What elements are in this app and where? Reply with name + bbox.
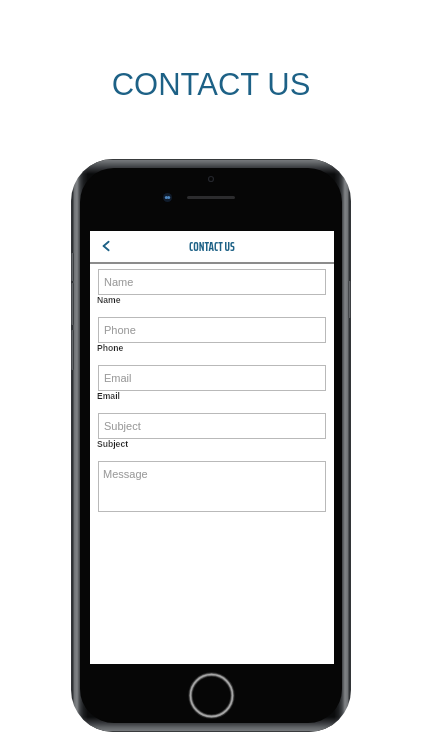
staticText: CONTACT US [0,67,422,102]
button[interactable]: Email [98,365,326,391]
staticText: Name [104,276,134,288]
staticText: Email [104,372,132,384]
staticText: Email [97,391,120,401]
button[interactable]: Message [98,461,326,512]
button[interactable]: Subject [98,413,326,439]
staticText: Name [97,295,121,305]
staticText: Subject [104,420,141,432]
staticText: Message [103,468,148,480]
button[interactable]: Phone [98,317,326,343]
button[interactable]: Back [94,234,118,258]
staticText: Phone [104,324,136,336]
staticText: CONTACT US [189,236,235,256]
staticText: Phone [97,343,124,353]
button[interactable]: Name [98,269,326,295]
staticText: Subject [97,439,129,449]
